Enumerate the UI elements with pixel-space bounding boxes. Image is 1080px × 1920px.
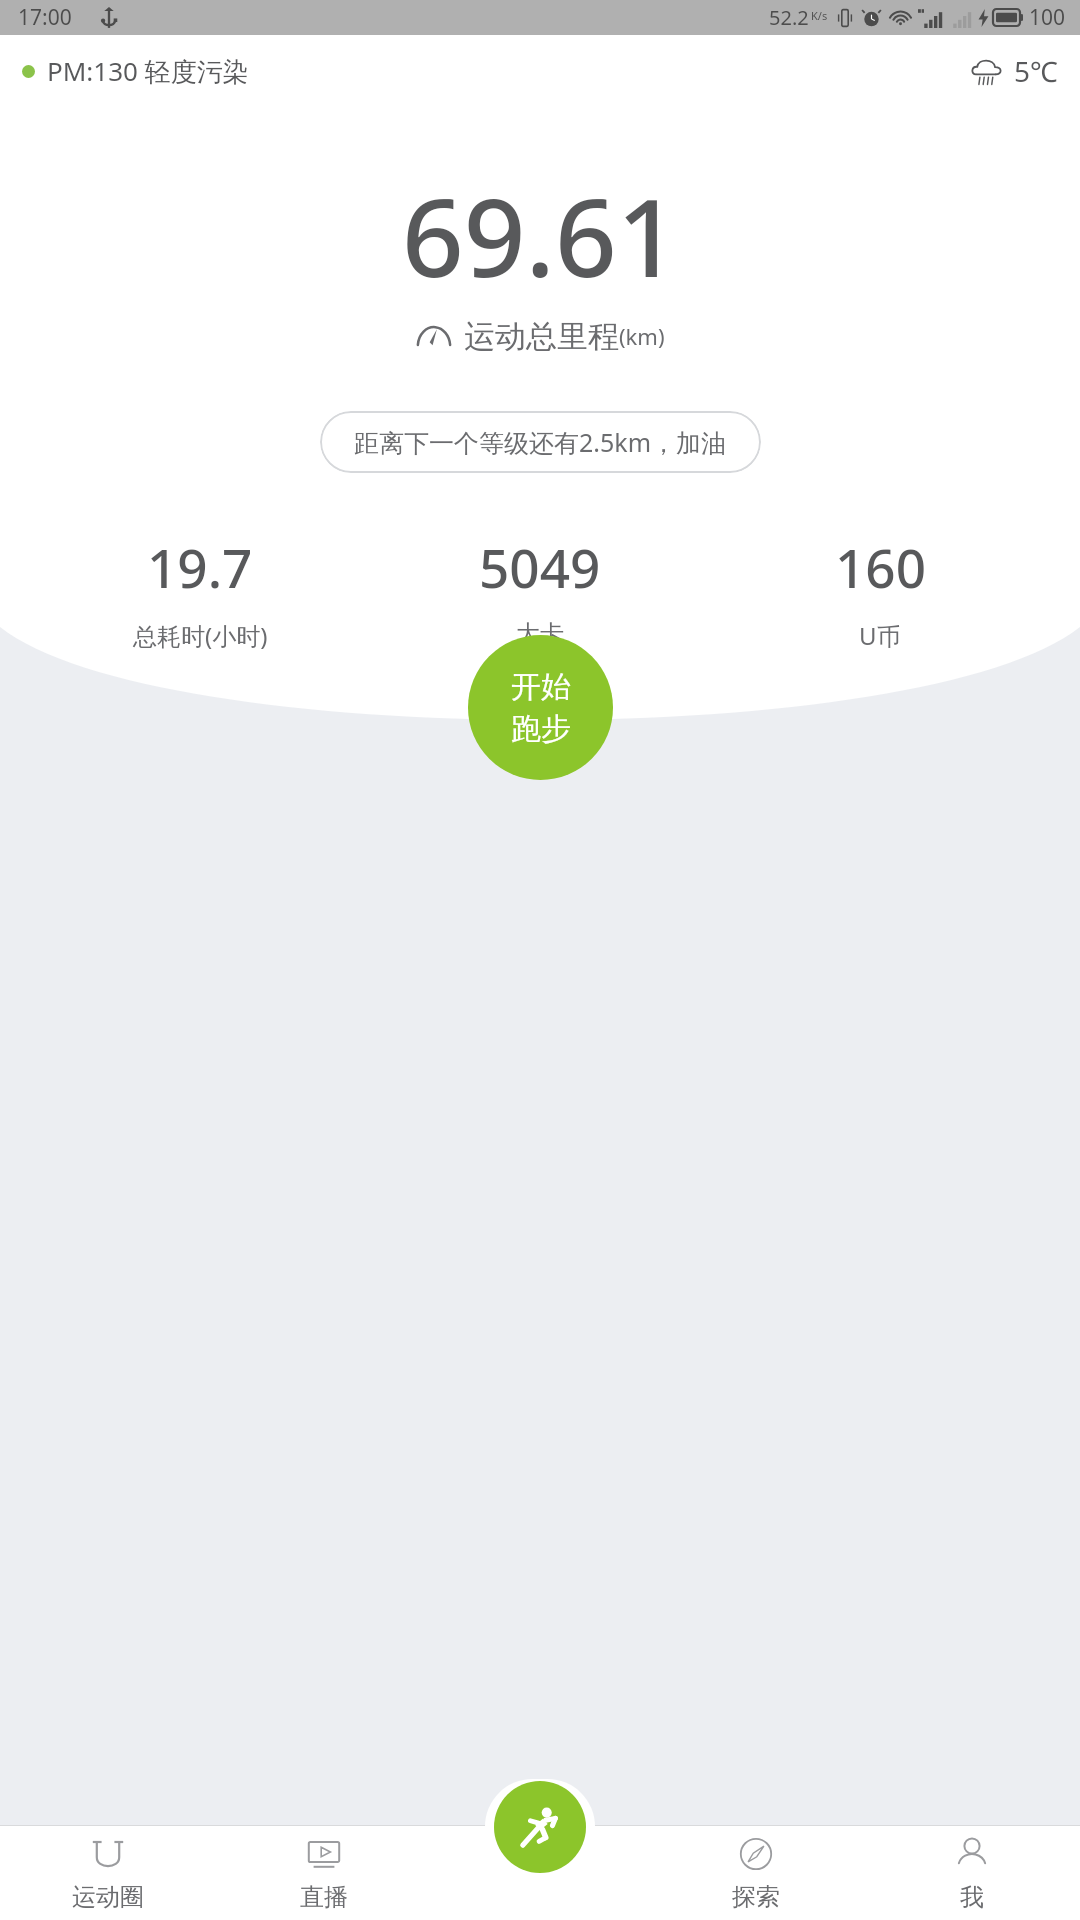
staticText: 69.61 xyxy=(402,162,679,309)
staticText: 5℃ xyxy=(1014,52,1058,90)
staticText: 开始 跑步 xyxy=(511,668,571,748)
button[interactable]: 5℃ xyxy=(970,52,1058,90)
staticText: K/s xyxy=(811,8,828,23)
button[interactable]: 160 xyxy=(710,531,1050,652)
staticText: 19.7 xyxy=(147,531,253,603)
staticText: 100 xyxy=(1029,3,1066,32)
staticText: (km) xyxy=(619,321,665,351)
button[interactable]: 探索 xyxy=(648,1825,864,1920)
staticText: 运动圈 xyxy=(72,1882,144,1912)
staticText: 160 xyxy=(835,531,926,603)
staticText: 5049 xyxy=(479,531,601,603)
staticText: 距离下一个等级还有2.5km，加油 xyxy=(354,425,727,459)
staticText: 52.2 xyxy=(769,4,809,31)
button[interactable]: PM:130 轻度污染 xyxy=(22,53,249,89)
staticText: PM:130 轻度污染 xyxy=(47,53,249,89)
button[interactable]: 19.7 xyxy=(30,531,370,652)
staticText: 大卡 xyxy=(516,619,564,649)
button[interactable]: 开始跑步 xyxy=(494,1781,586,1873)
staticText: 我 xyxy=(960,1882,984,1912)
button[interactable]: 我 xyxy=(864,1825,1080,1920)
staticText: 探索 xyxy=(732,1882,780,1912)
staticText: 运动总里程 xyxy=(464,317,619,356)
button[interactable]: 5049 xyxy=(370,531,710,649)
button[interactable]: 开始 跑步 xyxy=(468,635,613,780)
staticText: 17:00 xyxy=(18,3,72,32)
button[interactable]: 运动圈 xyxy=(0,1825,216,1920)
staticText: U币 xyxy=(859,619,901,652)
button[interactable]: 直播 xyxy=(216,1825,432,1920)
button[interactable]: 距离下一个等级还有2.5km，加油 xyxy=(320,411,761,473)
staticText: 总耗时(小时) xyxy=(133,619,268,652)
staticText: 直播 xyxy=(300,1882,348,1912)
